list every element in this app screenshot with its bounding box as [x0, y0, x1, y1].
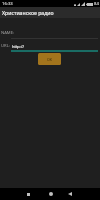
staticText: OK [47, 57, 53, 62]
button[interactable]: Recents [22, 188, 35, 200]
staticText: URL: [1, 43, 10, 49]
staticText: 16:33 [2, 1, 13, 7]
button[interactable]: Home [44, 188, 57, 200]
staticText: http:// [12, 44, 24, 49]
button[interactable]: OK [38, 53, 61, 65]
staticText: Христианское радио [2, 9, 54, 16]
staticText: NAME: [1, 30, 15, 36]
button[interactable]: Back [63, 188, 76, 200]
staticText: 84 [94, 1, 99, 7]
